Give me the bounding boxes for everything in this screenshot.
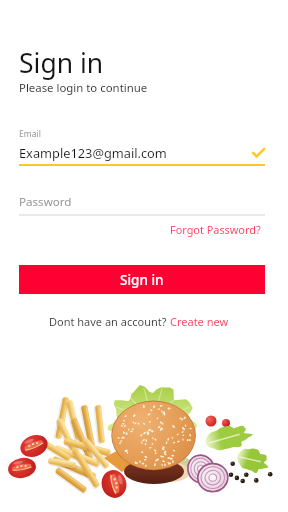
staticText: Email [19,128,41,140]
button[interactable]: Forgot Password? [162,216,269,243]
staticText: Sign in [120,271,164,289]
staticText: Password [19,194,72,210]
staticText: Example123@gmail.com [19,144,167,161]
staticText: Dont have an account? [49,314,170,329]
button[interactable]: Create new [170,314,229,329]
staticText: Forgot Password? [170,222,261,237]
staticText: Please login to continue [19,80,148,96]
staticText: Sign in [19,45,104,81]
staticText: Create new [170,314,229,329]
other: Email verified [252,147,265,160]
button[interactable]: Sign in [19,265,265,294]
